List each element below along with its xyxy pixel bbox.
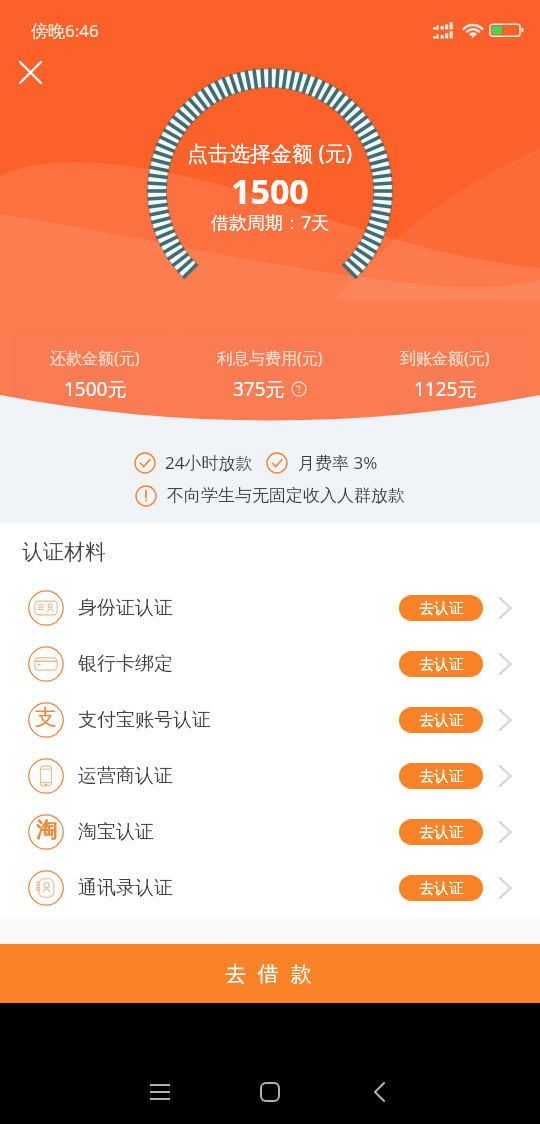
button[interactable]: 去认证	[399, 707, 483, 733]
staticText: 去认证	[419, 879, 464, 898]
staticText: 去认证	[419, 711, 464, 730]
button[interactable]: 运营商认证	[0, 748, 540, 804]
button[interactable]: 利息与费用(元)	[184, 330, 355, 422]
button[interactable]: 到账金额(元)	[359, 330, 530, 422]
button[interactable]: 去 借 款	[0, 944, 540, 1003]
staticText: 运营商认证	[78, 764, 173, 788]
staticText: 借款周期：7天	[211, 210, 330, 235]
button[interactable]: 淘	[0, 804, 540, 860]
staticText: 银行卡绑定	[78, 652, 173, 676]
button[interactable]: Close	[12, 54, 48, 90]
button[interactable]: 通讯录认证	[0, 860, 540, 916]
staticText: 1500	[231, 168, 309, 214]
button[interactable]: 去认证	[399, 819, 483, 845]
staticText: 支	[35, 704, 57, 732]
staticText: 去认证	[419, 767, 464, 786]
button[interactable]: 去认证	[399, 763, 483, 789]
button[interactable]: Home	[248, 1070, 292, 1114]
staticText: 到账金额(元)	[400, 347, 490, 369]
staticText: 通讯录认证	[78, 876, 173, 900]
button[interactable]: 还款金额(元)	[10, 330, 180, 422]
button[interactable]: Recent apps	[138, 1070, 182, 1114]
staticText: 淘	[36, 817, 57, 843]
staticText: 点击选择金额 (元)	[187, 139, 353, 168]
staticText: 去认证	[419, 655, 464, 674]
staticText: 去认证	[419, 599, 464, 618]
button[interactable]: 去认证	[399, 651, 483, 677]
button[interactable]: 点击选择金额 (元)	[148, 69, 392, 313]
button[interactable]: 去认证	[399, 875, 483, 901]
staticText: 24小时放款	[165, 451, 253, 474]
staticText: 1500元	[64, 376, 127, 402]
button[interactable]: 身份证认证	[0, 580, 540, 636]
staticText: 傍晚6:46	[31, 19, 99, 42]
staticText: 不向学生与无固定收入人群放款	[167, 485, 405, 506]
staticText: 月费率 3%	[298, 451, 378, 474]
staticText: 身份证认证	[78, 596, 173, 620]
button[interactable]: 银行卡绑定	[0, 636, 540, 692]
staticText: 1125元	[414, 376, 477, 402]
staticText: 375元	[233, 376, 285, 402]
button[interactable]: 去认证	[399, 595, 483, 621]
staticText: 还款金额(元)	[50, 347, 140, 369]
staticText: 支付宝账号认证	[78, 708, 211, 732]
staticText: 淘宝认证	[78, 820, 154, 844]
staticText: 利息与费用(元)	[217, 347, 323, 369]
staticText: 认证材料	[22, 539, 106, 565]
staticText: 去认证	[419, 823, 464, 842]
button[interactable]: 支	[0, 692, 540, 748]
button[interactable]: Back	[358, 1070, 402, 1114]
staticText: 去 借 款	[225, 959, 315, 988]
